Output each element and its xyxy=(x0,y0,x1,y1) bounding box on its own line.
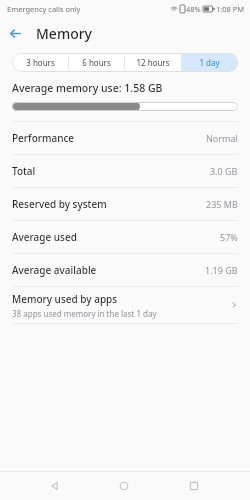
staticText: 57% xyxy=(220,231,238,243)
staticText: 1 day xyxy=(199,57,220,68)
button[interactable]: Home xyxy=(110,472,138,500)
staticText: 1.19 GB xyxy=(205,264,238,276)
button[interactable]: Average available xyxy=(0,254,250,286)
button[interactable]: Performance xyxy=(0,122,250,154)
staticText: 3 hours xyxy=(26,57,55,68)
staticText: Memory used by apps xyxy=(12,292,118,306)
staticText: 6 hours xyxy=(82,57,111,68)
button[interactable]: 3 hours xyxy=(12,53,68,72)
button[interactable]: Reserved by system xyxy=(0,188,250,220)
staticText: Performance xyxy=(12,131,75,145)
staticText: Reserved by system xyxy=(12,197,107,211)
staticText: Total xyxy=(12,164,36,178)
button[interactable]: 1 day xyxy=(181,53,238,72)
staticText: 1:08 PM xyxy=(216,4,245,14)
button[interactable]: Back xyxy=(41,472,69,500)
staticText: Average memory use: 1.58 GB xyxy=(12,81,163,95)
staticText: 38 apps used memory in the last 1 day xyxy=(12,308,157,319)
staticText: Emergency calls only xyxy=(7,4,81,14)
button[interactable]: Back xyxy=(0,18,30,48)
staticText: 48% xyxy=(186,4,201,14)
button[interactable]: Memory used by apps xyxy=(0,287,250,323)
staticText: 235 MB xyxy=(206,198,238,210)
staticText: 12 hours xyxy=(136,57,170,68)
staticText: Average available xyxy=(12,263,97,277)
staticText: Memory xyxy=(36,24,93,43)
staticText: 3.0 GB xyxy=(210,165,238,177)
button[interactable]: 12 hours xyxy=(124,53,181,72)
button[interactable]: Recent apps xyxy=(180,472,208,500)
staticText: Normal xyxy=(206,132,238,144)
button[interactable]: Total xyxy=(0,155,250,187)
button[interactable]: 6 hours xyxy=(68,53,124,72)
staticText: Average used xyxy=(12,230,77,244)
button[interactable]: Average used xyxy=(0,221,250,253)
